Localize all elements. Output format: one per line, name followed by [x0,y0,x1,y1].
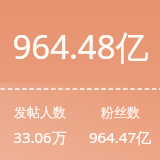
button[interactable]: 964.48亿 [0,0,160,160]
button[interactable]: 粉丝数 [80,90,160,160]
staticText: 964.48亿 [12,24,149,69]
staticText: 发帖人数 [14,104,66,120]
button[interactable]: 发帖人数 [0,90,80,160]
staticText: 33.06万 [13,127,67,147]
staticText: 964.47亿 [89,127,151,147]
staticText: 粉丝数 [101,104,140,120]
